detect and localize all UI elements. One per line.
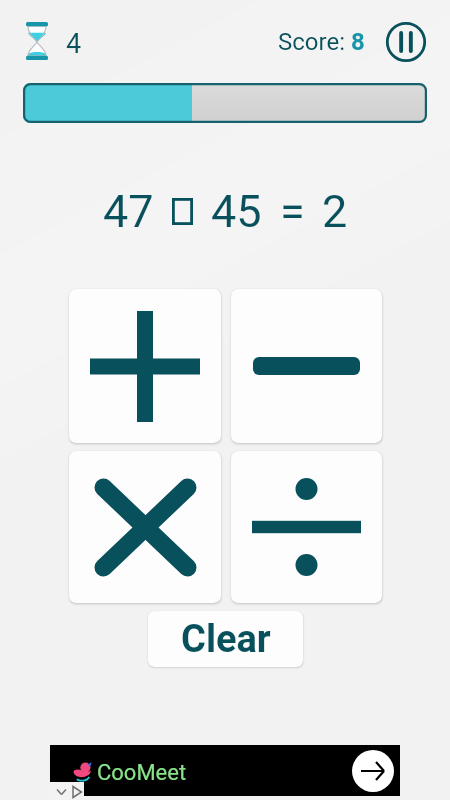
staticText: CooMeet [97, 760, 187, 786]
staticText: Score: [278, 28, 351, 56]
button[interactable]: Clear [148, 611, 303, 667]
staticText: Clear [181, 617, 271, 662]
button[interactable]: Pause [385, 21, 427, 63]
staticText: 8 [351, 28, 365, 56]
button[interactable]: CooMeet [50, 745, 400, 796]
button[interactable]: Plus [69, 289, 221, 443]
staticText: 47 [103, 185, 154, 238]
button[interactable]: Ad choices [50, 782, 84, 800]
button[interactable]: Divide [231, 451, 382, 603]
staticText: 2 [322, 185, 348, 238]
button[interactable]: Open advertisement [352, 750, 394, 792]
staticText: 45 [211, 185, 262, 238]
staticText: 4 [66, 28, 82, 60]
staticText: = [280, 185, 305, 238]
button[interactable]: Multiply [69, 451, 221, 603]
button[interactable]: Minus [231, 289, 382, 443]
